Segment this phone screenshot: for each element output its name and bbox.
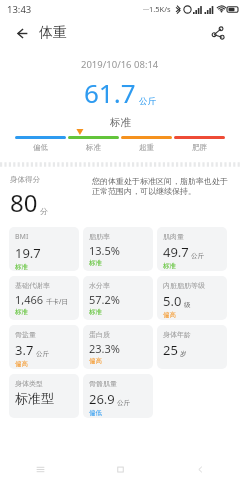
staticText: 57.2% (89, 292, 120, 307)
staticText: 标准 (86, 143, 101, 152)
staticText: 偏高 (163, 311, 176, 319)
staticText: 偏高 (15, 360, 28, 368)
staticText: 80 (10, 186, 38, 219)
staticText: 49.7 (163, 243, 189, 261)
staticText: 3.7 (15, 341, 34, 359)
button[interactable]: 骨盐量 (9, 325, 79, 369)
button[interactable]: BMI (9, 227, 79, 271)
staticText: 19.7 (15, 244, 41, 262)
staticText: 身体年龄 (163, 330, 191, 339)
staticText: 岁 (180, 350, 187, 358)
staticText: 肥胖 (192, 143, 207, 152)
staticText: 身体类型 (15, 379, 43, 388)
staticText: BMI (15, 232, 29, 242)
staticText: 千卡/日 (46, 297, 68, 306)
staticText: 肌肉量 (163, 232, 184, 241)
staticText: 蛋白质 (89, 330, 110, 339)
staticText: 标准型 (15, 390, 54, 406)
button[interactable]: 身体类型 (9, 374, 79, 418)
staticText: 内脏脂肪等级 (163, 281, 205, 290)
button[interactable]: 骨骼肌量 (83, 374, 153, 418)
staticText: 公斤 (117, 399, 130, 407)
staticText: 级 (184, 301, 191, 309)
staticText: 公斤 (191, 252, 204, 260)
staticText: 标准 (89, 308, 102, 316)
staticText: 标准 (110, 116, 131, 129)
staticText: 61.7 (84, 75, 136, 110)
staticText: 标准 (163, 262, 176, 270)
staticText: 2019/10/16 08:14 (81, 58, 159, 71)
staticText: 26.9 (89, 390, 115, 408)
staticText: 标准 (15, 263, 28, 271)
staticText: 偏低 (89, 409, 102, 417)
staticText: 分 (40, 206, 48, 216)
staticText: 1,466 (15, 292, 44, 307)
button[interactable]: 基础代谢率 (9, 276, 79, 320)
button[interactable]: 水分率 (83, 276, 153, 320)
staticText: 公斤 (36, 350, 49, 358)
staticText: 标准 (89, 259, 102, 267)
staticText: ···1.5K/s (143, 4, 171, 14)
button[interactable]: Home (80, 458, 160, 480)
staticText: 13.5% (89, 243, 120, 258)
staticText: 偏低 (33, 143, 48, 152)
staticText: 您的体重处于标准区间，脂肪率也处于正常范围内，可以继续保持。 (92, 176, 230, 197)
staticText: 5.0 (163, 292, 182, 310)
staticText: 骨骼肌量 (89, 379, 117, 388)
staticText: 体重 (39, 24, 67, 42)
button[interactable]: Share (206, 21, 230, 45)
staticText: 骨盐量 (15, 330, 36, 339)
staticText: 公斤 (139, 96, 156, 107)
staticText: 23.3% (89, 341, 120, 356)
staticText: 基础代谢率 (15, 281, 50, 290)
button[interactable]: 脂肪率 (83, 227, 153, 271)
staticText: 超重 (139, 143, 154, 152)
staticText: 水分率 (89, 281, 110, 290)
button[interactable]: 肌肉量 (157, 227, 227, 271)
staticText: 脂肪率 (89, 232, 110, 241)
staticText: 13:43 (7, 3, 32, 16)
button[interactable]: Recents (0, 458, 80, 480)
button[interactable]: 蛋白质 (83, 325, 153, 369)
button[interactable]: 身体年龄 (157, 325, 227, 369)
staticText: 标准 (15, 308, 28, 316)
button[interactable]: Back (10, 22, 32, 44)
button[interactable]: 内脏脂肪等级 (157, 276, 227, 320)
staticText: 25 (163, 341, 178, 359)
staticText: 偏高 (89, 357, 102, 365)
staticText: 身体得分 (10, 175, 40, 184)
